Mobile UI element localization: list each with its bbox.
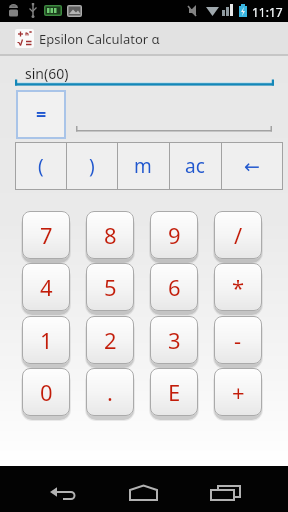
staticText: 7 <box>40 220 53 250</box>
staticText: 3 <box>168 325 181 355</box>
button[interactable]: ac <box>169 142 221 190</box>
staticText: / <box>234 220 243 250</box>
staticText: * <box>232 272 245 302</box>
button[interactable] <box>198 466 254 512</box>
button[interactable]: 3 <box>150 316 198 364</box>
button[interactable]: E <box>150 368 198 416</box>
staticText: 6 <box>168 272 181 302</box>
staticText: ( <box>38 153 44 179</box>
button[interactable]: + <box>214 368 262 416</box>
button[interactable]: = <box>16 90 66 139</box>
staticText: ← <box>244 155 260 177</box>
button[interactable] <box>40 466 96 512</box>
staticText: 0 <box>40 377 53 407</box>
button[interactable]: ( <box>15 142 66 190</box>
staticText: ac <box>185 153 205 179</box>
button[interactable]: 0 <box>22 368 70 416</box>
button[interactable]: * <box>214 263 262 311</box>
button[interactable]: / <box>214 211 262 259</box>
button[interactable]: 4 <box>22 263 70 311</box>
button[interactable]: ) <box>66 142 117 190</box>
button[interactable]: - <box>214 316 262 364</box>
staticText: ) <box>89 153 95 179</box>
button[interactable]: 1 <box>22 316 70 364</box>
staticText: E <box>168 377 181 407</box>
staticText: + <box>232 377 245 407</box>
button[interactable]: 9 <box>150 211 198 259</box>
button[interactable]: 7 <box>22 211 70 259</box>
button[interactable]: m <box>117 142 169 190</box>
staticText: 4 <box>40 272 53 302</box>
button[interactable]: . <box>86 368 134 416</box>
staticText: 1 <box>40 325 53 355</box>
button[interactable]: 8 <box>86 211 134 259</box>
staticText: = <box>36 102 47 127</box>
staticText: 8 <box>104 220 117 250</box>
button[interactable]: 5 <box>86 263 134 311</box>
button[interactable]: 2 <box>86 316 134 364</box>
staticText: - <box>234 325 242 355</box>
staticText: sin(60) <box>25 64 69 83</box>
staticText: 9 <box>168 220 181 250</box>
button[interactable] <box>118 466 174 512</box>
button[interactable]: ← <box>221 142 283 190</box>
staticText: 2 <box>104 325 117 355</box>
staticText: 11:17 <box>252 4 283 20</box>
staticText: . <box>107 377 113 407</box>
staticText: m <box>134 153 152 179</box>
staticText: Epsilon Calculator α <box>39 30 160 48</box>
button[interactable]: 6 <box>150 263 198 311</box>
staticText: 5 <box>104 272 117 302</box>
